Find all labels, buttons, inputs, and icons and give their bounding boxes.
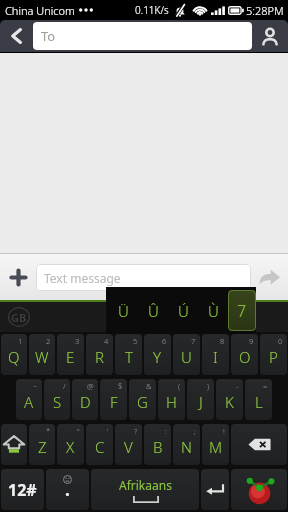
button[interactable]: ~ <box>16 379 42 420</box>
staticText: 5 <box>133 336 138 346</box>
button[interactable]: 4 <box>86 334 113 375</box>
button[interactable]: 9 <box>231 334 258 375</box>
staticText: L <box>255 392 263 412</box>
staticText: X <box>66 437 75 457</box>
button[interactable]: 6 <box>144 334 171 375</box>
button[interactable]: Add attachment <box>0 254 36 300</box>
button[interactable]: Afrikaans <box>91 469 199 510</box>
staticText: 2 <box>46 336 51 346</box>
button[interactable]: ) <box>187 379 214 420</box>
staticText: N <box>181 437 192 457</box>
staticText: ) <box>207 381 210 391</box>
staticText: O <box>239 347 251 367</box>
staticText: 6 <box>162 336 167 346</box>
staticText: H <box>166 392 177 412</box>
staticText: Afrikaans <box>119 477 172 493</box>
staticText: 0.11K/s <box>135 3 169 17</box>
staticText: $ <box>118 381 123 391</box>
button[interactable]: ! <box>202 424 229 465</box>
button[interactable]: To <box>33 22 252 50</box>
staticText: Text message <box>44 270 121 286</box>
staticText: ; <box>194 426 196 436</box>
staticText: = <box>263 381 268 391</box>
staticText: " <box>77 426 80 436</box>
staticText: * <box>46 426 51 436</box>
staticText: J <box>199 392 203 412</box>
button[interactable]: / <box>44 379 70 420</box>
staticText: Q <box>8 347 20 367</box>
staticText: Ü <box>118 301 129 321</box>
staticText: @ <box>87 381 94 391</box>
button[interactable]: = <box>245 379 272 420</box>
staticText: G <box>137 392 148 412</box>
button[interactable]: 1 <box>1 334 27 375</box>
button[interactable]: $ <box>100 379 127 420</box>
button[interactable]: Back <box>0 20 33 52</box>
button[interactable]: Send <box>251 254 288 300</box>
staticText: Û <box>148 301 159 321</box>
staticText: A <box>24 392 34 412</box>
staticText: D <box>80 392 91 412</box>
staticText: Z <box>38 437 47 457</box>
staticText: B <box>153 437 163 457</box>
staticText: C <box>95 437 105 457</box>
staticText: 7 <box>237 300 247 322</box>
button[interactable]: - <box>216 379 243 420</box>
button[interactable]: : <box>144 424 171 465</box>
staticText: 9 <box>249 336 254 346</box>
button[interactable]: Emoji <box>231 469 287 510</box>
button[interactable]: ( <box>158 379 185 420</box>
staticText: 0 <box>278 336 283 346</box>
staticText: / <box>63 381 66 391</box>
staticText: P <box>269 347 278 367</box>
staticText: ~ <box>33 381 38 391</box>
button[interactable]: 7 <box>173 334 200 375</box>
staticText: W <box>35 347 49 367</box>
button[interactable]: Text message <box>36 264 251 291</box>
staticText: S <box>53 392 62 412</box>
button[interactable]: & <box>129 379 156 420</box>
button[interactable]: " <box>57 424 84 465</box>
staticText: T <box>125 347 133 367</box>
staticText: China Unicom <box>5 3 75 18</box>
button[interactable]: Contacts <box>252 20 288 52</box>
button[interactable]: * <box>29 424 55 465</box>
button[interactable]: ' <box>86 424 113 465</box>
button[interactable]: Backspace <box>231 424 287 465</box>
button[interactable]: 8 <box>202 334 229 375</box>
staticText: - <box>236 381 239 391</box>
staticText: ' <box>107 426 109 436</box>
staticText: ? <box>134 426 138 436</box>
button[interactable]: ? <box>115 424 142 465</box>
button[interactable]: 0 <box>260 334 287 375</box>
button[interactable]: 2 <box>29 334 55 375</box>
button[interactable]: Enter <box>201 469 229 510</box>
staticText: : <box>165 426 167 436</box>
button[interactable]: ; <box>173 424 200 465</box>
staticText: Ú <box>178 301 189 321</box>
staticText: 1 <box>18 336 23 346</box>
staticText: 7 <box>191 336 196 346</box>
staticText: Ù <box>208 301 219 321</box>
button[interactable]: Shift <box>1 424 27 465</box>
staticText: 12# <box>8 479 37 501</box>
staticText: 3 <box>75 336 80 346</box>
staticText: . <box>65 478 70 501</box>
staticText: Y <box>153 347 162 367</box>
staticText: ( <box>178 381 181 391</box>
staticText: V <box>124 437 133 457</box>
button[interactable]: 3 <box>57 334 84 375</box>
staticText: K <box>225 392 234 412</box>
button[interactable]: . <box>46 469 89 510</box>
staticText: R <box>95 347 104 367</box>
staticText: ! <box>223 426 225 436</box>
button[interactable]: @ <box>72 379 98 420</box>
button[interactable]: 5 <box>115 334 142 375</box>
button[interactable]: 12# <box>1 469 44 510</box>
staticText: F <box>110 392 118 412</box>
staticText: 8 <box>220 336 225 346</box>
button[interactable]: GB <box>8 307 30 327</box>
staticText: E <box>66 347 75 367</box>
staticText: U <box>181 347 192 367</box>
staticText: I <box>213 347 218 367</box>
